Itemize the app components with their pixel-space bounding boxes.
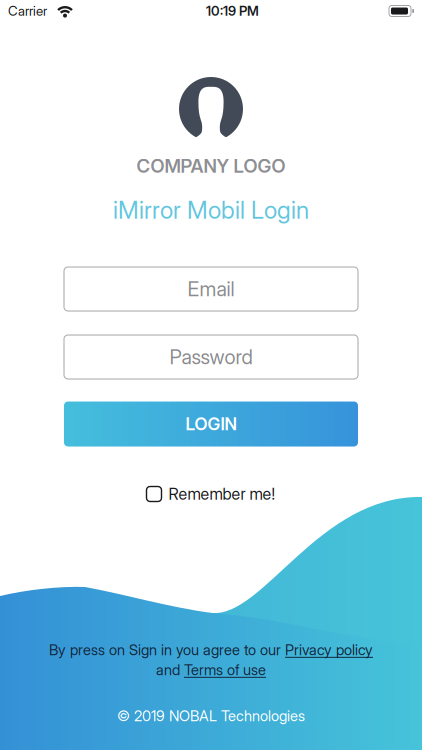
staticText: iMirror Mobil Login	[113, 195, 309, 224]
staticText: and	[156, 661, 184, 679]
staticText: Email	[187, 277, 234, 301]
staticText: 10:19 PM	[206, 3, 259, 19]
staticText: By press on Sign in you agree to our	[49, 641, 285, 659]
button[interactable]: Terms of use	[184, 661, 266, 679]
button[interactable]: LOGIN	[64, 401, 358, 446]
button[interactable]: Privacy policy	[285, 641, 373, 659]
button[interactable]: Remember me!	[146, 484, 275, 504]
staticText: Password	[169, 345, 252, 369]
staticText: Terms of use	[184, 661, 266, 679]
button[interactable]: Email	[64, 267, 358, 311]
staticText: Carrier	[8, 3, 47, 19]
staticText: COMPANY LOGO	[136, 155, 285, 177]
button[interactable]: Password	[64, 335, 358, 379]
staticText: LOGIN	[185, 413, 236, 434]
staticText: Remember me!	[168, 484, 275, 504]
staticText: Privacy policy	[285, 641, 373, 659]
staticText: © 2019 NOBAL Technologies	[117, 707, 305, 725]
